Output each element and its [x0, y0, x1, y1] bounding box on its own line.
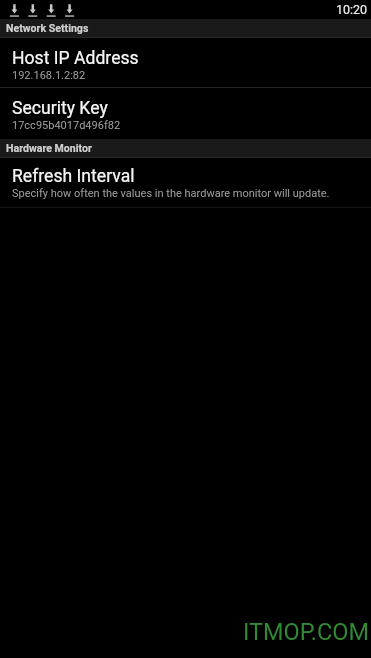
button[interactable]: Refresh Interval: [0, 158, 371, 207]
staticText: Hardware Monitor: [6, 142, 92, 154]
button[interactable]: Security Key: [0, 88, 371, 139]
staticText: 17cc95b4017d496f82: [12, 119, 121, 132]
other: Download notifications: [0, 0, 90, 19]
staticText: Network Settings: [6, 22, 89, 34]
staticText: ITMOP.COM: [243, 618, 370, 646]
staticText: Host IP Address: [12, 48, 139, 69]
button[interactable]: Host IP Address: [0, 38, 371, 87]
staticText: Refresh Interval: [12, 166, 135, 187]
staticText: Security Key: [12, 98, 108, 119]
staticText: Specify how often the values in the hard…: [12, 187, 330, 200]
staticText: 10:20: [336, 2, 368, 17]
staticText: 192.168.1.2:82: [12, 69, 86, 82]
